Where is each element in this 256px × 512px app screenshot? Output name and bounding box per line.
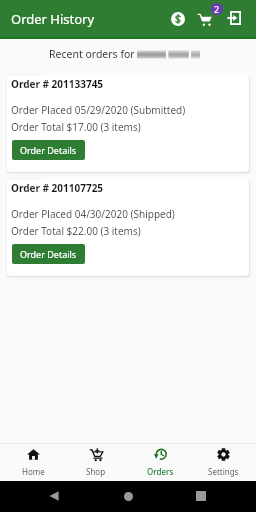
staticText: Order Placed 05/29/2020 (Submitted) (11, 103, 186, 117)
staticText: Order # 201133745 (11, 77, 104, 91)
button[interactable]: Orders (129, 448, 191, 477)
button[interactable]: Order Details (12, 140, 85, 160)
button[interactable]: Home (2, 448, 64, 477)
button[interactable]: Shopping cart, 2 items (192, 4, 220, 32)
staticText: Shop (86, 466, 106, 477)
staticText: Order Total $22.00 (3 items) (11, 224, 141, 238)
button[interactable]: Home (118, 486, 138, 506)
staticText: Recent orders for (49, 47, 135, 61)
staticText: Settings (208, 466, 239, 477)
button[interactable]: Order Details (12, 244, 85, 264)
button[interactable]: Log out (221, 5, 247, 31)
staticText: Orders (147, 466, 174, 477)
staticText: Order Total $17.00 (3 items) (11, 120, 141, 134)
button[interactable]: Shop (65, 448, 127, 477)
button[interactable]: Recent apps (191, 486, 211, 506)
staticText: 2 (214, 3, 220, 15)
staticText: Order # 201107725 (11, 181, 104, 195)
staticText: Order Details (20, 248, 77, 260)
staticText: Home (22, 466, 45, 477)
staticText: Order Details (20, 144, 77, 156)
staticText: Order History (11, 10, 95, 28)
staticText: Order Placed 04/30/2020 (Shipped) (11, 207, 175, 221)
button[interactable]: Payments (164, 5, 191, 32)
button[interactable]: Settings (192, 448, 254, 477)
button[interactable]: Order # 201133745 (7, 75, 249, 172)
button[interactable]: Back (44, 486, 64, 506)
button[interactable]: Order # 201107725 (7, 179, 249, 276)
